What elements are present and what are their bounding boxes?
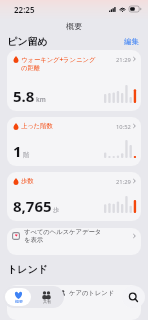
button[interactable]: ウォーキング+ランニング の距離: [7, 50, 141, 111]
staticText: 上った階数: [21, 122, 116, 130]
staticText: 5.8: [13, 86, 35, 106]
staticText: 階: [23, 151, 30, 159]
staticText: 共有: [43, 299, 51, 304]
staticText: km: [36, 95, 46, 104]
staticText: 概要: [15, 299, 23, 304]
staticText: トレンド: [7, 263, 48, 276]
staticText: 歩数: [21, 177, 116, 185]
staticText: ピン留め: [7, 35, 48, 48]
staticText: すべてのヘルスケアデータ を表示: [24, 228, 133, 244]
button[interactable]: 共有: [31, 288, 62, 306]
staticText: 編集: [124, 37, 139, 46]
button[interactable]: すべてのヘルスケアデータ を表示: [7, 228, 141, 255]
staticText: 21:29: [116, 178, 131, 186]
staticText: 10:52: [116, 123, 131, 131]
staticText: 21:29: [116, 56, 131, 64]
staticText: 概要: [66, 21, 82, 31]
button[interactable]: 検索: [122, 286, 145, 308]
staticText: 1: [13, 141, 22, 161]
button[interactable]: 概要: [5, 288, 31, 306]
staticText: ケアのトレンド: [69, 289, 133, 297]
button[interactable]: 上った階数: [7, 117, 141, 166]
staticText: 8,765: [13, 196, 52, 216]
staticText: 22:25: [14, 4, 35, 15]
staticText: ウォーキング+ランニング の距離: [21, 55, 116, 72]
button[interactable]: 編集: [124, 37, 139, 46]
button[interactable]: ケアのトレンド: [7, 285, 141, 320]
staticText: 歩: [53, 206, 60, 214]
button[interactable]: 歩数: [7, 172, 141, 221]
